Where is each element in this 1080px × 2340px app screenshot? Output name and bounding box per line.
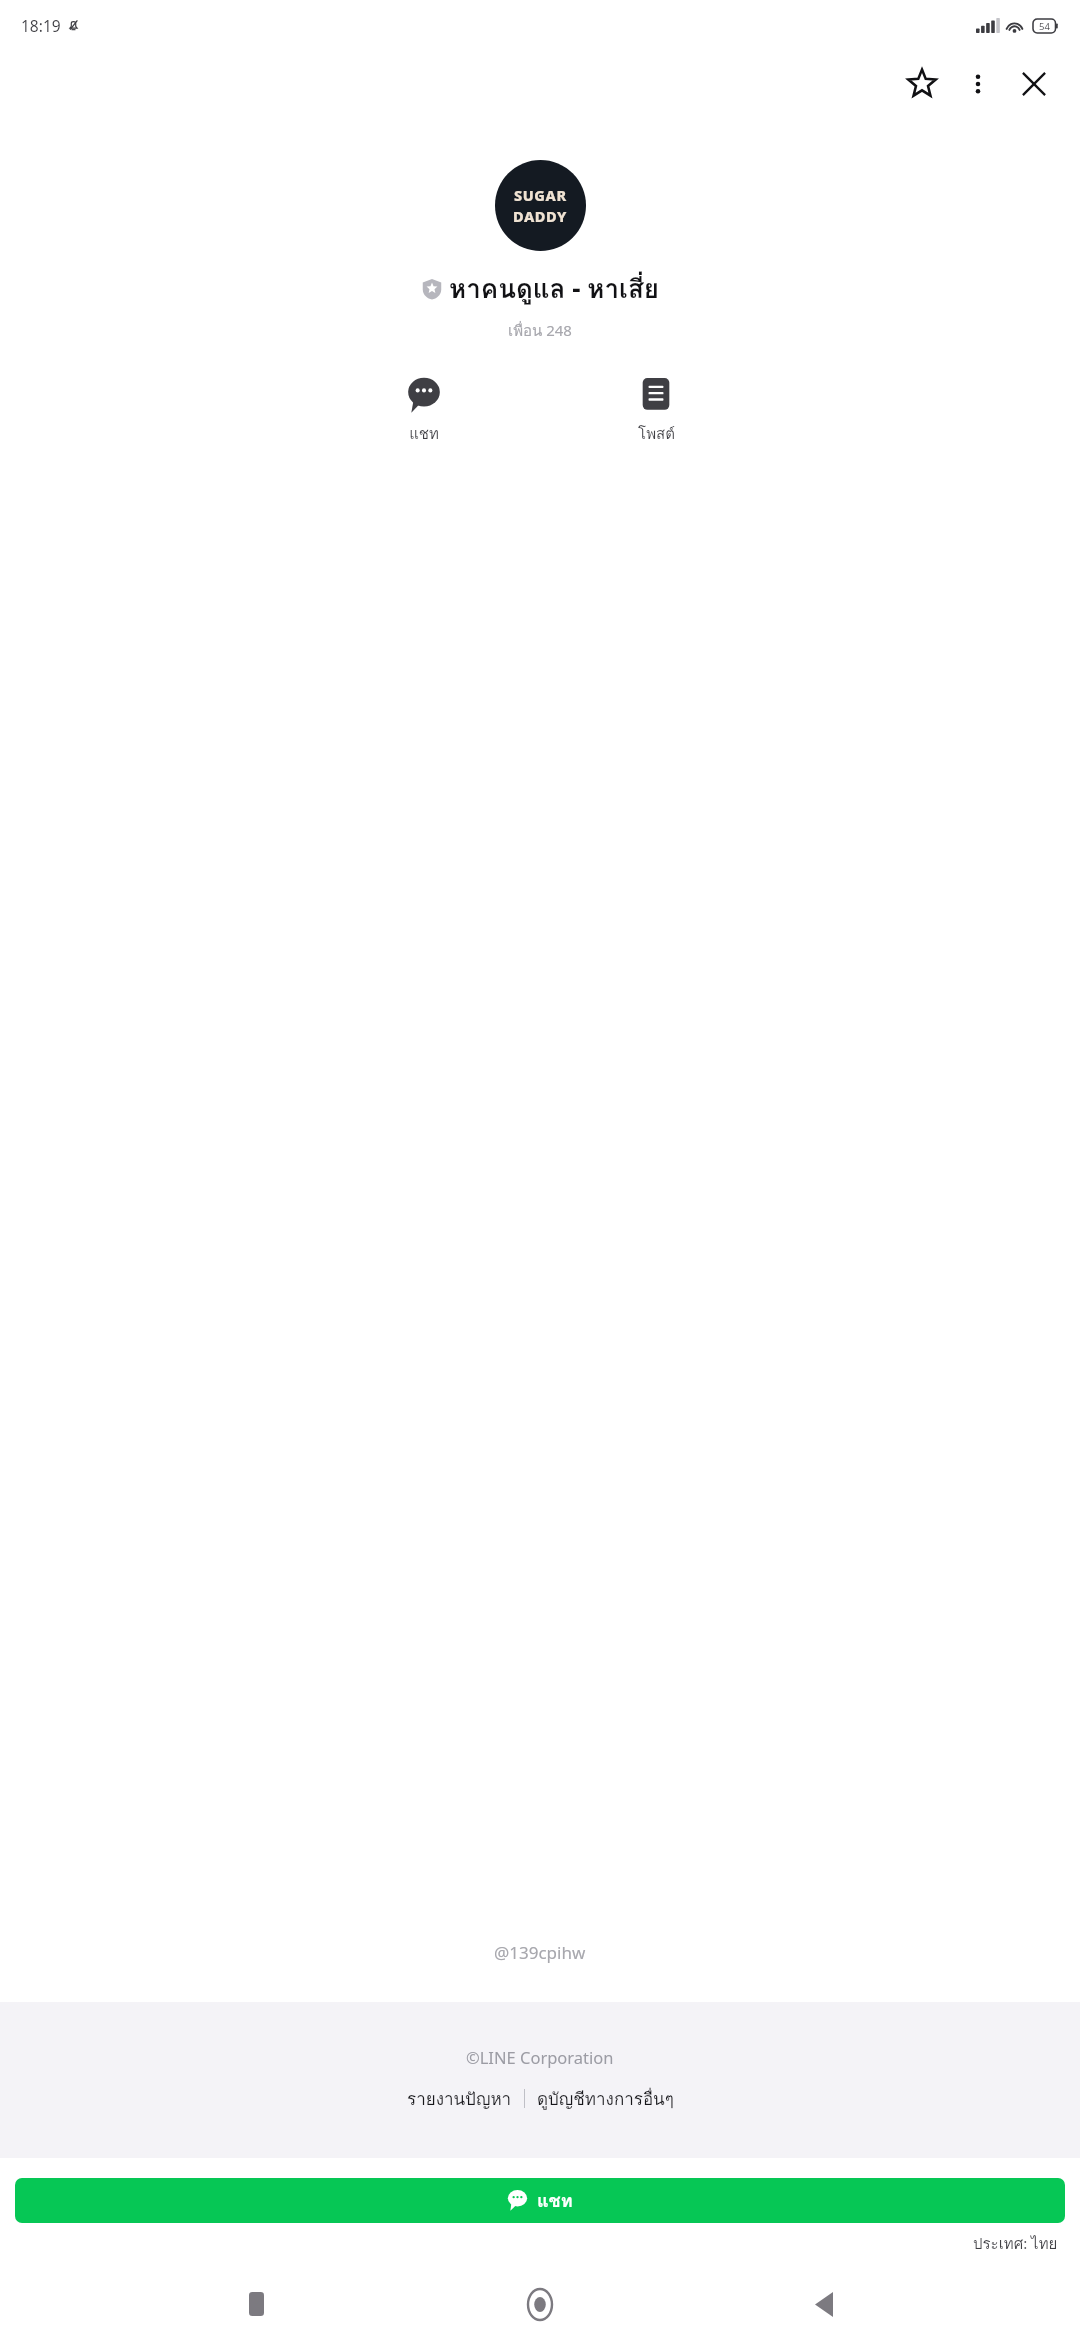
staticText: DADDY (513, 206, 568, 226)
staticText: เพื่อน 248 (508, 319, 572, 343)
button[interactable]: ดูบัญชีทางการอื่นๆ (533, 2083, 678, 2114)
button[interactable]: โพสต์ (598, 375, 714, 448)
staticText: 18:19 (21, 15, 61, 36)
button[interactable]: แชท (15, 2178, 1065, 2223)
staticText: ©LINE Corporation (466, 2046, 614, 2068)
button[interactable]: Home (512, 2276, 568, 2332)
button[interactable]: More options (950, 56, 1006, 112)
staticText: แชท (537, 2186, 573, 2215)
button[interactable]: Favorite (894, 56, 950, 112)
staticText: 54 (1039, 20, 1050, 33)
button[interactable]: Back (796, 2276, 852, 2332)
staticText: ดูบัญชีทางการอื่นๆ (537, 2085, 674, 2112)
staticText: @139cpihw (494, 1941, 586, 1964)
button[interactable]: Close (1006, 56, 1062, 112)
staticText: โพสต์ (638, 422, 675, 446)
button[interactable]: รายงานปัญหา (403, 2083, 516, 2114)
button[interactable]: Profile image (495, 160, 586, 251)
button[interactable]: Recent apps (228, 2276, 284, 2332)
staticText: SUGAR (514, 185, 567, 205)
staticText: รายงานปัญหา (407, 2085, 512, 2112)
staticText: แชท (409, 422, 439, 446)
staticText: ประเทศ: ไทย (973, 2232, 1058, 2256)
button[interactable]: แชท (366, 375, 482, 448)
staticText: หาคนดูแล - หาเสี่ย (449, 268, 659, 309)
